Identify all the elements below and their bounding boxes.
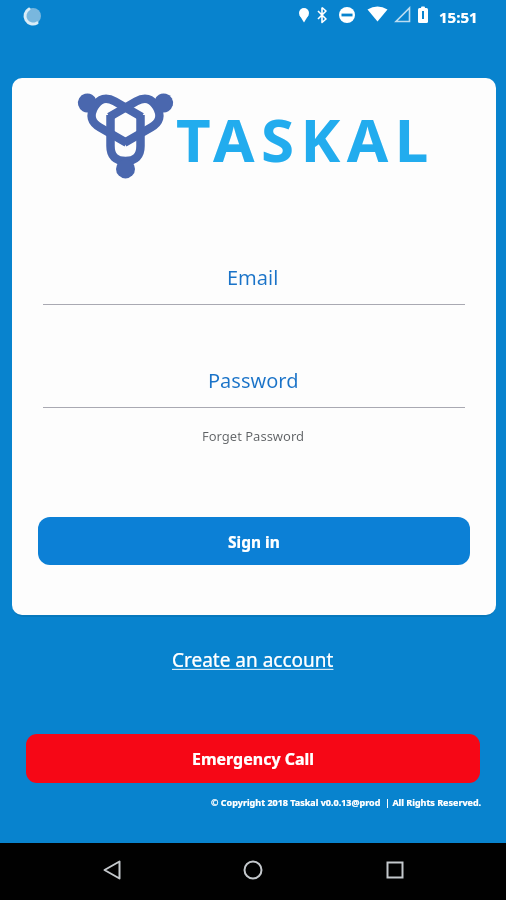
button[interactable]: Password (0, 367, 506, 393)
staticText: Sign in (228, 531, 280, 552)
staticText: Password (208, 367, 299, 393)
button[interactable]: Create an account (0, 645, 506, 675)
staticText: Create an account (172, 647, 334, 673)
staticText: Email (227, 264, 279, 290)
button[interactable]: Email (0, 264, 506, 290)
button[interactable]: Sign in (38, 517, 470, 565)
staticText: 15:51 (439, 7, 478, 27)
button[interactable]: Forget Password (0, 427, 506, 445)
staticText: Forget Password (202, 427, 305, 445)
staticText: TASKAL (176, 98, 435, 180)
staticText: Emergency Call (192, 748, 315, 770)
button[interactable]: Emergency Call (26, 734, 480, 783)
staticText: © Copyright 2018 Taskal v0.0.13@prod | A… (211, 796, 482, 808)
